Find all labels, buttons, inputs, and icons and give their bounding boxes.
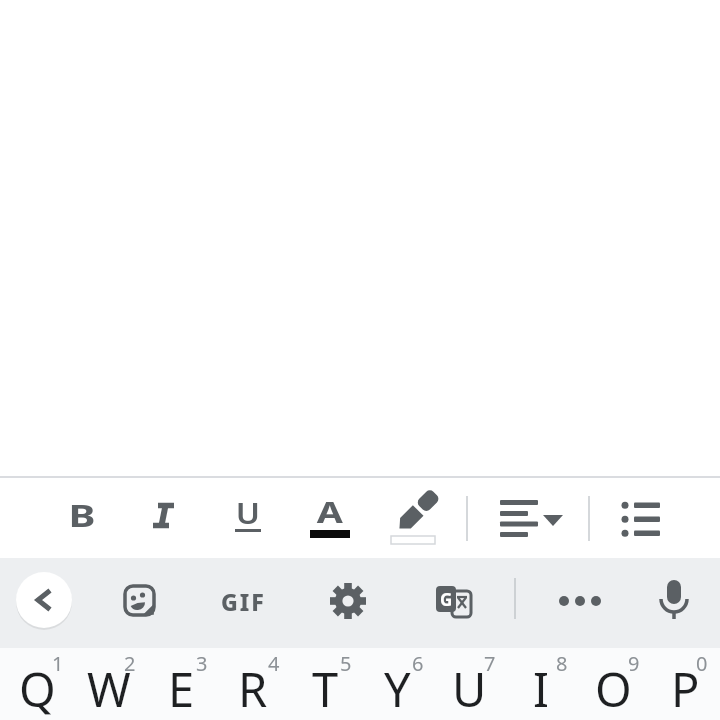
staticText: G bbox=[440, 588, 453, 610]
button[interactable] bbox=[1, 650, 73, 720]
staticText: 5 bbox=[340, 650, 352, 676]
button[interactable]: B bbox=[50, 485, 114, 545]
button[interactable] bbox=[649, 650, 720, 720]
button[interactable] bbox=[16, 572, 72, 628]
staticText: GIF bbox=[221, 586, 266, 617]
button[interactable]: A bbox=[298, 486, 362, 536]
button[interactable] bbox=[389, 489, 441, 549]
staticText: A bbox=[317, 492, 344, 531]
button[interactable] bbox=[217, 650, 289, 720]
staticText: T bbox=[312, 657, 339, 720]
staticText: Q bbox=[19, 657, 56, 720]
button[interactable]: U bbox=[216, 486, 280, 538]
staticText: 7 bbox=[484, 650, 496, 676]
button[interactable] bbox=[654, 576, 694, 624]
button[interactable] bbox=[548, 585, 612, 617]
staticText: 4 bbox=[268, 650, 280, 676]
button[interactable] bbox=[289, 650, 361, 720]
button[interactable] bbox=[134, 486, 194, 544]
staticText: 8 bbox=[556, 650, 568, 676]
staticText: R bbox=[238, 657, 268, 720]
staticText: 9 bbox=[628, 650, 640, 676]
button[interactable] bbox=[432, 580, 476, 622]
staticText: 6 bbox=[412, 650, 424, 676]
button[interactable] bbox=[433, 650, 505, 720]
staticText: U bbox=[236, 493, 260, 532]
button[interactable] bbox=[73, 650, 145, 720]
button[interactable] bbox=[496, 494, 568, 542]
button[interactable] bbox=[577, 650, 649, 720]
staticText: U bbox=[452, 657, 487, 720]
staticText: O bbox=[595, 657, 632, 720]
staticText: W bbox=[87, 657, 131, 720]
staticText: I bbox=[533, 657, 549, 720]
staticText: P bbox=[671, 657, 700, 720]
button[interactable] bbox=[361, 650, 433, 720]
button[interactable] bbox=[145, 650, 217, 720]
staticText: 2 bbox=[124, 650, 136, 676]
button[interactable] bbox=[328, 581, 368, 621]
button[interactable]: GIF bbox=[203, 575, 283, 627]
staticText: E bbox=[168, 657, 195, 720]
staticText: 3 bbox=[196, 650, 208, 676]
button[interactable] bbox=[121, 582, 159, 620]
staticText: 1 bbox=[52, 650, 64, 676]
button[interactable] bbox=[616, 496, 668, 542]
button[interactable] bbox=[505, 650, 577, 720]
staticText: B bbox=[68, 495, 95, 536]
staticText: 0 bbox=[696, 650, 708, 676]
staticText: Y bbox=[384, 657, 411, 720]
